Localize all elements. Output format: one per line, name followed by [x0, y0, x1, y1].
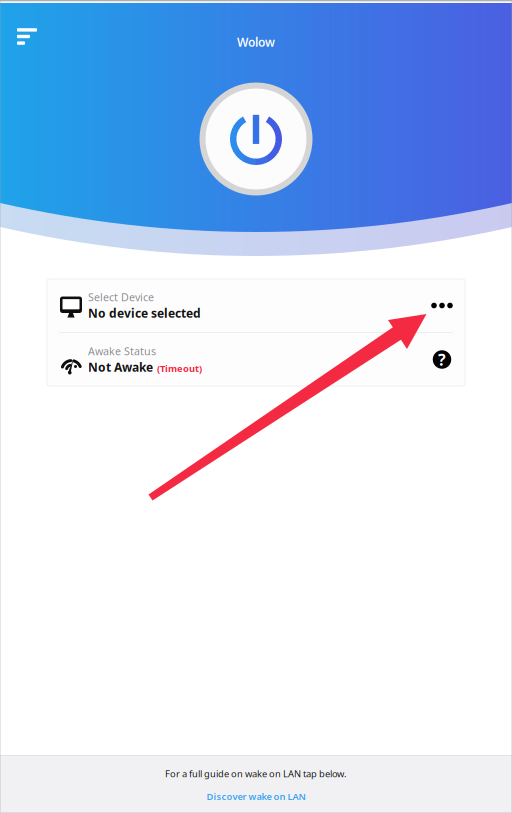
staticText: For a full guide on wake on LAN tap belo…: [165, 767, 347, 780]
staticText: Not Awake: [88, 359, 153, 375]
staticText: (Timeout): [157, 362, 202, 375]
button[interactable]: Help: [425, 342, 465, 376]
staticText: Awake Status: [88, 344, 156, 358]
button[interactable]: Discover wake on LAN: [198, 787, 313, 806]
button[interactable]: More options: [425, 288, 465, 322]
staticText: Select Device: [88, 290, 154, 304]
staticText: ?: [438, 349, 446, 370]
staticText: Discover wake on LAN: [206, 790, 305, 803]
button[interactable]: Power: [198, 81, 314, 197]
button[interactable]: Menu: [0, 19, 53, 60]
staticText: No device selected: [88, 305, 201, 321]
staticText: Wolow: [237, 34, 275, 50]
